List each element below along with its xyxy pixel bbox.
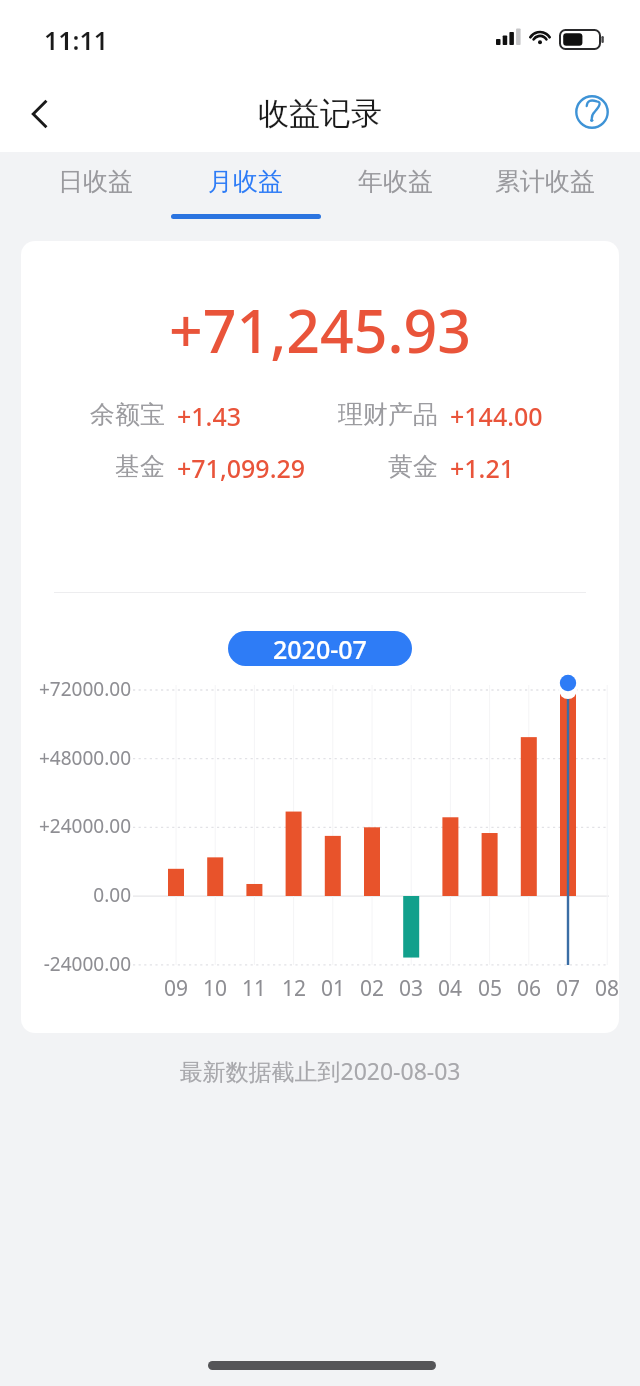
button[interactable]: 累计收益 xyxy=(475,152,615,225)
staticText: 理财产品 xyxy=(281,399,438,430)
staticText: +144.00 xyxy=(450,399,543,433)
staticText: 2020-07 xyxy=(273,632,367,666)
staticText: 04 xyxy=(430,974,470,1003)
staticText: 月收益 xyxy=(208,166,283,197)
staticText: 10 xyxy=(195,974,235,1003)
button[interactable]: 月收益 xyxy=(175,152,315,225)
staticText: 收益记录 xyxy=(0,94,640,133)
staticText: +71,245.93 xyxy=(21,290,619,370)
staticText: 0.00 xyxy=(31,882,131,908)
staticText: 黄金 xyxy=(281,451,438,482)
staticText: 03 xyxy=(391,974,431,1003)
staticText: -24000.00 xyxy=(31,951,131,977)
staticText: 日收益 xyxy=(58,166,133,197)
staticText: +24000.00 xyxy=(31,813,131,839)
staticText: 最新数据截止到2020-08-03 xyxy=(0,1055,640,1086)
staticText: +71,099.29 xyxy=(177,451,306,485)
staticText: 06 xyxy=(509,974,549,1003)
staticText: +48000.00 xyxy=(31,745,131,771)
button[interactable]: 2020-07 xyxy=(228,631,412,666)
staticText: 基金 xyxy=(21,451,165,482)
staticText: 累计收益 xyxy=(495,166,595,197)
staticText: 11:11 xyxy=(44,23,109,57)
button[interactable]: Help xyxy=(566,86,618,138)
staticText: 01 xyxy=(313,974,353,1003)
staticText: 08 xyxy=(587,974,619,1003)
staticText: 余额宝 xyxy=(21,399,165,430)
staticText: +1.43 xyxy=(177,399,242,433)
staticText: 02 xyxy=(352,974,392,1003)
button[interactable]: 日收益 xyxy=(25,152,165,225)
staticText: 年收益 xyxy=(358,166,433,197)
staticText: +72000.00 xyxy=(31,676,131,702)
staticText: 05 xyxy=(470,974,510,1003)
staticText: 12 xyxy=(274,974,314,1003)
button[interactable]: Back xyxy=(14,88,66,140)
button[interactable]: 年收益 xyxy=(325,152,465,225)
staticText: +1.21 xyxy=(450,451,515,485)
staticText: 07 xyxy=(548,974,588,1003)
staticText: 09 xyxy=(156,974,196,1003)
staticText: 11 xyxy=(234,974,274,1003)
